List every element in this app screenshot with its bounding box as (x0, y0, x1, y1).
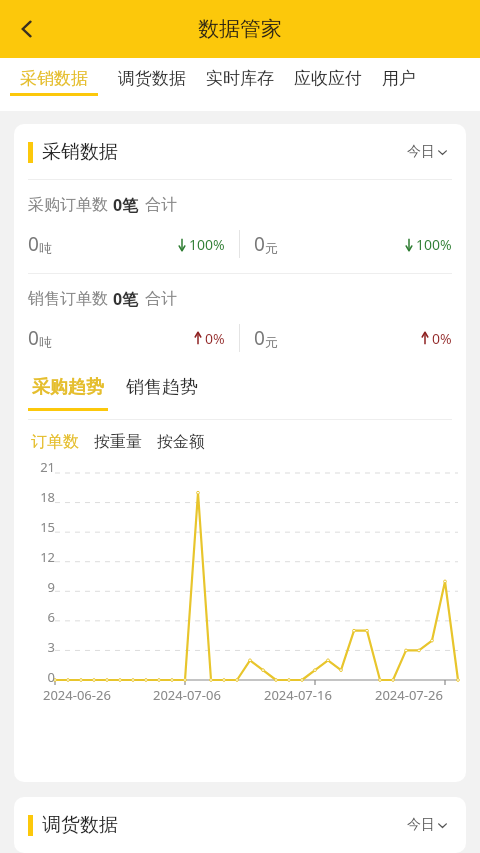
staticText: 今日 (407, 816, 435, 834)
staticText: 0 (47, 668, 55, 686)
staticText: 2024-07-16 (264, 686, 332, 704)
staticText: 吨 (39, 240, 52, 256)
button[interactable]: 今日 (403, 812, 452, 838)
staticText: 2024-07-26 (375, 686, 443, 704)
staticText: 0笔 (113, 288, 139, 310)
staticText: 元 (265, 240, 278, 256)
button[interactable]: 订单数 (28, 429, 82, 455)
staticText: 9 (47, 578, 55, 596)
staticText: 销售趋势 (126, 376, 198, 399)
staticText: 0% (432, 329, 452, 348)
staticText: 采购趋势 (32, 376, 104, 399)
staticText: 21 (40, 458, 55, 476)
staticText: 100% (416, 235, 452, 254)
staticText: 应收应付 (294, 68, 362, 89)
staticText: 销售订单数 (28, 289, 108, 309)
button[interactable]: 今日 (403, 139, 452, 165)
button[interactable]: 用户 (372, 58, 426, 93)
button[interactable]: 销售趋势 (122, 373, 202, 402)
staticText: 0笔 (113, 194, 139, 216)
staticText: 3 (47, 638, 55, 656)
staticText: 2024-06-26 (43, 686, 111, 704)
button[interactable]: 按重量 (91, 429, 145, 455)
staticText: 0 (254, 231, 265, 257)
staticText: 调货数据 (118, 68, 186, 89)
staticText: 数据管家 (198, 16, 282, 42)
staticText: 按重量 (94, 432, 142, 452)
staticText: 0% (205, 329, 225, 348)
staticText: 采购订单数 (28, 195, 108, 215)
staticText: 2024-07-06 (153, 686, 221, 704)
staticText: 按金额 (157, 432, 205, 452)
button[interactable]: 实时库存 (196, 58, 284, 93)
staticText: 6 (47, 608, 55, 626)
staticText: 订单数 (31, 432, 79, 452)
staticText: 采销数据 (42, 140, 118, 164)
staticText: 0 (28, 231, 39, 257)
button[interactable]: 应收应付 (284, 58, 372, 93)
staticText: 吨 (39, 334, 52, 350)
staticText: 采销数据 (20, 68, 88, 89)
button[interactable]: 按金额 (154, 429, 208, 455)
staticText: 调货数据 (42, 813, 118, 837)
staticText: 100% (189, 235, 225, 254)
button[interactable]: 采销数据 (10, 58, 108, 96)
staticText: 用户 (382, 68, 416, 89)
staticText: 实时库存 (206, 68, 274, 89)
staticText: 今日 (407, 143, 435, 161)
staticText: 0 (28, 325, 39, 351)
staticText: 0 (254, 325, 265, 351)
staticText: 12 (40, 548, 55, 566)
staticText: 合计 (145, 289, 177, 309)
staticText: 合计 (145, 195, 177, 215)
button[interactable]: Back (0, 2, 54, 56)
button[interactable]: 调货数据 (108, 58, 196, 93)
staticText: 18 (40, 488, 55, 506)
staticText: 元 (265, 334, 278, 350)
button[interactable]: 采购趋势 (28, 373, 108, 411)
staticText: 15 (40, 518, 55, 536)
